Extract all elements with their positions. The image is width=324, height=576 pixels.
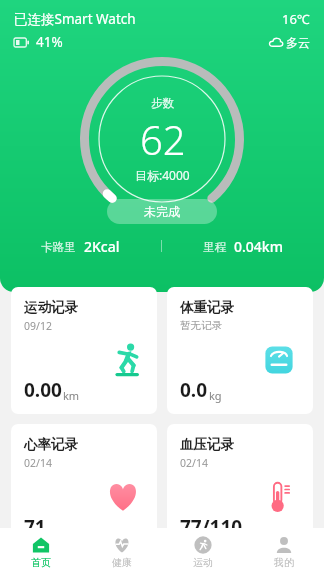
staticText: 41% (36, 33, 63, 51)
staticText: 02/14 (24, 456, 52, 470)
other: Heart rate record (105, 479, 141, 515)
staticText: 健康 (112, 556, 132, 569)
staticText: 首页 (31, 556, 51, 569)
staticText: 0.04km (234, 237, 283, 256)
staticText: 多云 (286, 35, 310, 50)
staticText: 暂无记录 (180, 319, 222, 332)
staticText: 0.00 (24, 377, 62, 403)
other: Exercise record (104, 341, 142, 379)
other: Sport (194, 536, 212, 554)
staticText: 2Kcal (84, 237, 120, 256)
staticText: 62 (140, 112, 186, 166)
staticText: 体重记录 (180, 299, 234, 316)
staticText: 运动记录 (24, 299, 78, 316)
staticText: 里程 (203, 240, 226, 254)
staticText: kg (209, 388, 222, 403)
staticText: 77/110 (180, 514, 243, 540)
staticText: 已连接Smart Watch (14, 10, 136, 28)
other: Health (113, 536, 131, 554)
staticText: km (63, 388, 80, 403)
other: Weight record (262, 343, 296, 377)
staticText: 我的 (274, 556, 294, 569)
staticText: 02/14 (180, 456, 208, 470)
staticText: 卡路里 (41, 240, 76, 254)
button[interactable]: 体重记录 (167, 287, 313, 414)
button[interactable]: Sport (162, 528, 243, 576)
staticText: 运动 (193, 556, 213, 569)
staticText: 血压记录 (180, 436, 234, 453)
staticText: 未完成 (144, 204, 180, 219)
staticText: 目标:4000 (135, 167, 190, 183)
staticText: 步数 (151, 96, 174, 110)
staticText: 心率记录 (24, 436, 78, 453)
button[interactable]: Profile (243, 528, 324, 576)
button[interactable]: 未完成 (107, 199, 217, 224)
staticText: 71 (24, 514, 46, 540)
staticText: 09/12 (24, 319, 52, 333)
button[interactable]: 心率记录 (11, 424, 157, 551)
staticText: 16℃ (282, 10, 310, 28)
button[interactable]: 运动记录 (11, 287, 157, 414)
staticText: 0.0 (180, 377, 208, 403)
other: Profile (275, 536, 293, 554)
button[interactable]: Home (0, 528, 81, 576)
other: Home (32, 536, 50, 554)
button[interactable]: Health (81, 528, 162, 576)
button[interactable]: 血压记录 (167, 424, 313, 551)
other: Blood pressure record (262, 480, 296, 514)
